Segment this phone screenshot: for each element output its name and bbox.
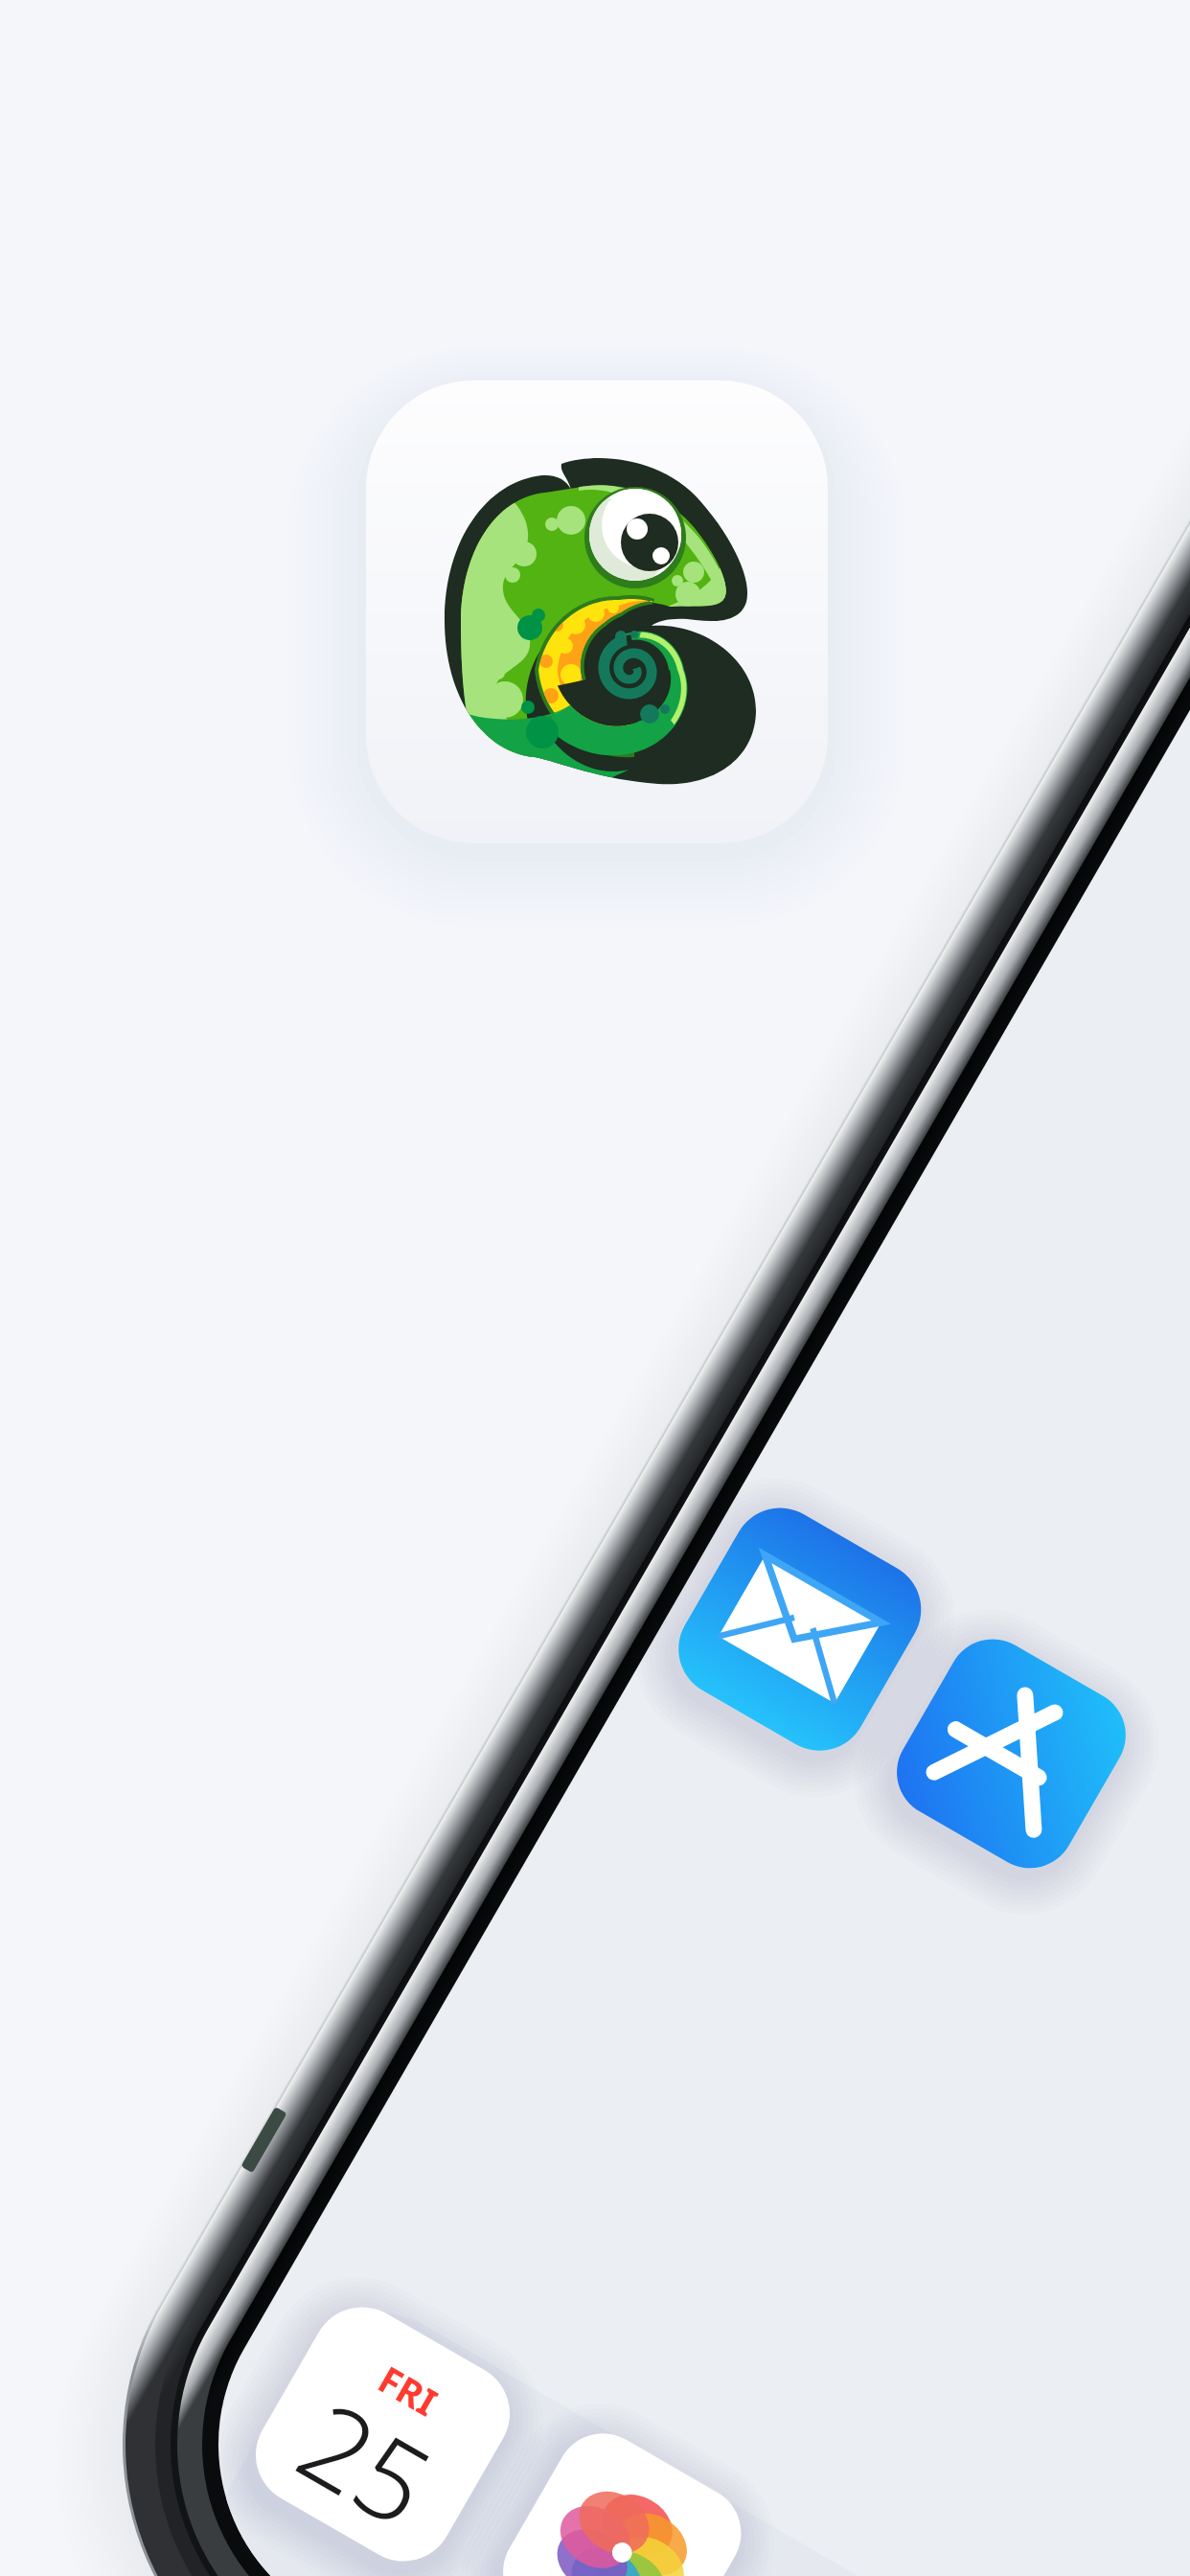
other: App icon showcase (0, 0, 1190, 2576)
